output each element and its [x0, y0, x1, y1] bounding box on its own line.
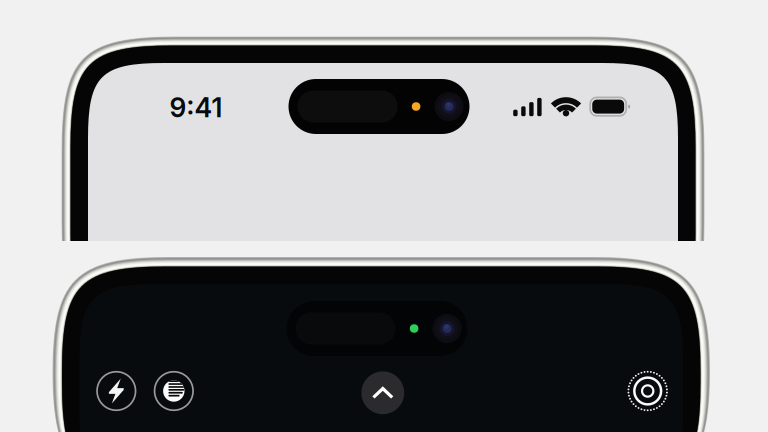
button[interactable]: Live Photo — [151, 368, 197, 414]
button[interactable]: Photographic styles — [625, 368, 671, 414]
button[interactable]: Flash — [93, 368, 139, 414]
button[interactable]: More camera controls — [360, 370, 406, 416]
staticText: 9:41 — [169, 91, 222, 124]
